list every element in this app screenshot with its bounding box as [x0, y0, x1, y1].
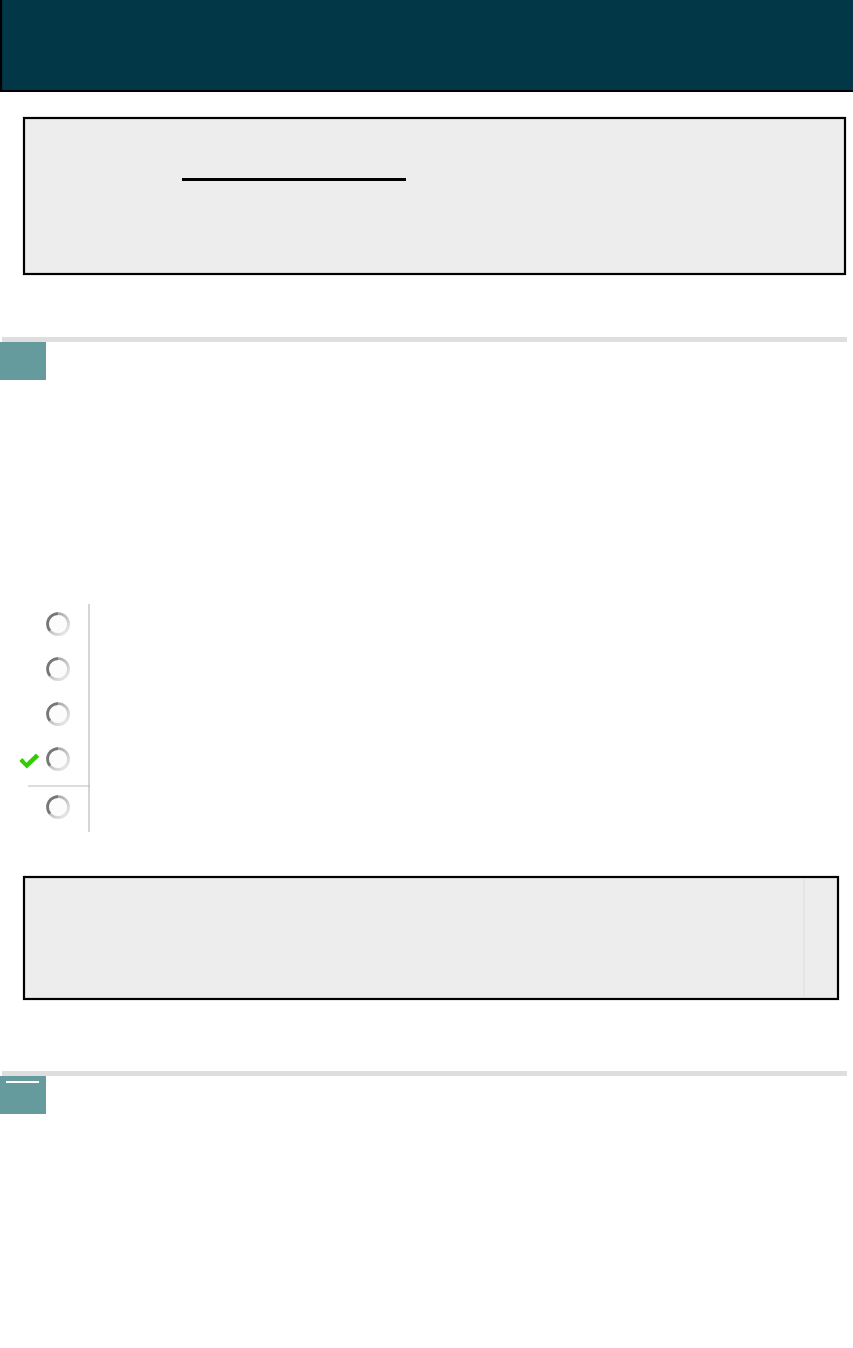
button[interactable]: Answer option: [0, 787, 853, 832]
button[interactable]: [0, 0, 853, 92]
button[interactable]: Answer option: [0, 694, 853, 739]
button[interactable]: [24, 118, 845, 274]
button[interactable]: [24, 877, 838, 999]
button[interactable]: Answer option: [0, 604, 853, 649]
button[interactable]: Selected answer: [0, 739, 853, 787]
button[interactable]: Section marker: [0, 1076, 46, 1114]
button[interactable]: Answer option: [0, 649, 853, 694]
